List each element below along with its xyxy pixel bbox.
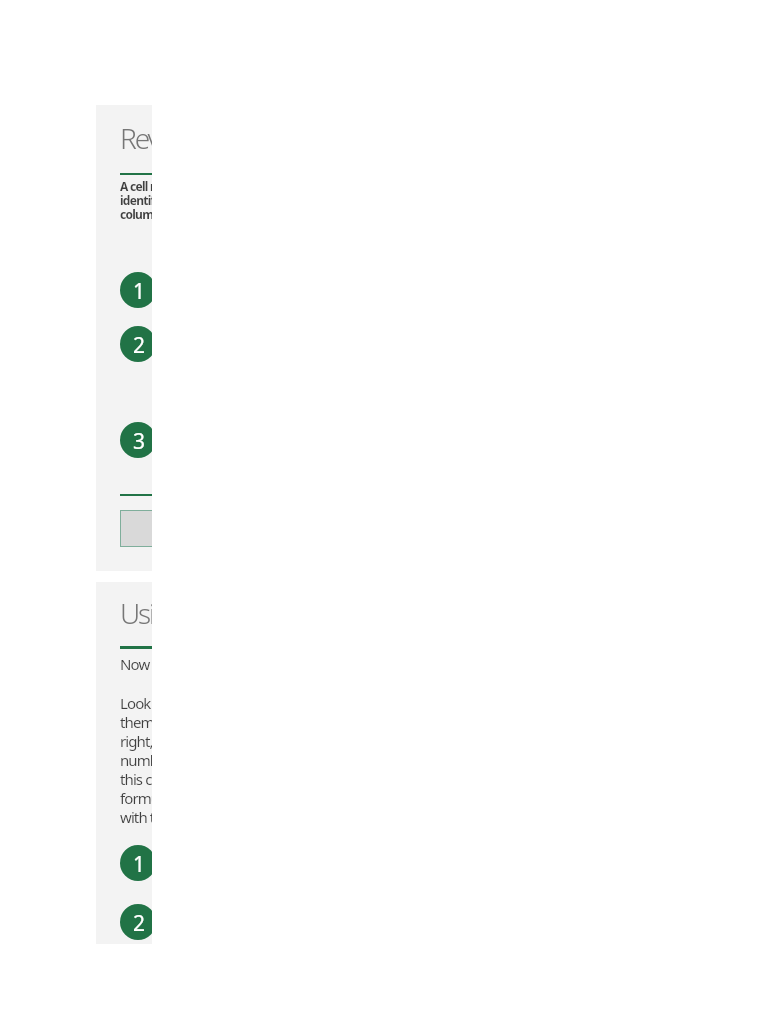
- button[interactable]: 1: [120, 845, 152, 884]
- button[interactable]: Review: Cell references: [96, 105, 152, 571]
- staticText: 2: [133, 909, 146, 938]
- button[interactable]: 2: [120, 904, 152, 940]
- button[interactable]: Using cell references: [96, 582, 152, 944]
- button[interactable]: 3: [120, 422, 152, 461]
- staticText: Review: Cell references: [120, 119, 152, 157]
- staticText: Now try it yourself in the worksheet.: [120, 654, 152, 674]
- staticText: 3: [133, 427, 146, 456]
- staticText: 1: [133, 277, 146, 306]
- staticText: 1: [133, 850, 146, 879]
- staticText: A cell reference is the address that ide…: [120, 178, 152, 223]
- button[interactable]: 1: [120, 272, 152, 311]
- staticText: Look at the cells in the sheet and find …: [120, 693, 152, 827]
- staticText: 2: [133, 331, 146, 360]
- button[interactable]: Open practice worksheet: [120, 510, 152, 547]
- staticText: Using cell references: [120, 594, 152, 632]
- button[interactable]: 2: [120, 326, 152, 384]
